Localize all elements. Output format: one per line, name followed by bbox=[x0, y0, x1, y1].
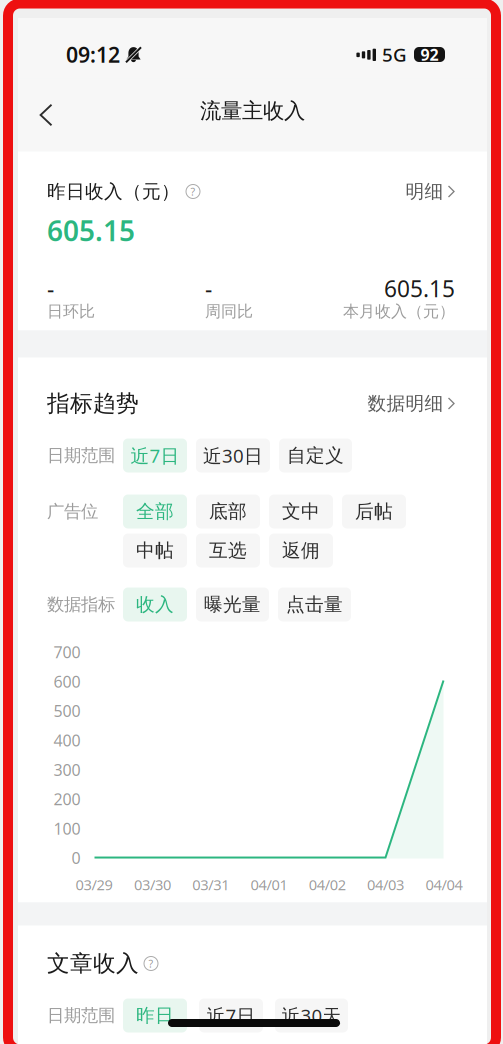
staticText: 日期范围 bbox=[47, 445, 115, 466]
button[interactable]: 返佣 bbox=[269, 533, 333, 567]
staticText: 04/04 bbox=[425, 875, 462, 894]
button[interactable]: 收入 bbox=[123, 587, 187, 621]
staticText: 0 bbox=[71, 847, 80, 868]
button[interactable]: 点击量 bbox=[278, 587, 351, 621]
staticText: 数据明细 bbox=[367, 392, 443, 415]
staticText: 近30日 bbox=[203, 443, 263, 468]
staticText: 09:12 bbox=[66, 40, 120, 69]
staticText: 300 bbox=[53, 759, 80, 780]
staticText: 全部 bbox=[136, 500, 174, 523]
staticText: 文中 bbox=[282, 500, 320, 523]
button[interactable]: 近30日 bbox=[196, 438, 270, 472]
staticText: 广告位 bbox=[47, 501, 98, 522]
staticText: 互选 bbox=[209, 539, 247, 562]
staticText: 返佣 bbox=[282, 539, 320, 562]
button[interactable]: 近7日 bbox=[123, 438, 187, 472]
staticText: 700 bbox=[53, 641, 80, 663]
staticText: 后帖 bbox=[355, 500, 393, 523]
staticText: 03/30 bbox=[134, 875, 171, 894]
button[interactable]: 互选 bbox=[196, 533, 260, 567]
staticText: 日环比 bbox=[47, 302, 95, 321]
staticText: 500 bbox=[53, 700, 80, 721]
button[interactable]: 数据明细 bbox=[367, 390, 455, 416]
staticText: 近7日 bbox=[130, 443, 179, 468]
staticText: 自定义 bbox=[287, 444, 344, 467]
staticText: 流量主收入 bbox=[200, 98, 305, 124]
staticText: 明细 bbox=[405, 180, 443, 203]
button[interactable]: 近7日 bbox=[199, 998, 263, 1032]
staticText: 600 bbox=[53, 671, 80, 692]
staticText: 近30天 bbox=[281, 1003, 341, 1028]
button[interactable]: 底部 bbox=[196, 494, 260, 528]
staticText: 周同比 bbox=[205, 302, 253, 321]
staticText: ? bbox=[148, 956, 153, 971]
staticText: 日期范围 bbox=[47, 1005, 115, 1026]
staticText: 底部 bbox=[209, 500, 247, 523]
staticText: 指标趋势 bbox=[47, 390, 139, 417]
staticText: 400 bbox=[53, 730, 80, 751]
button[interactable]: 后帖 bbox=[342, 494, 406, 528]
staticText: 03/29 bbox=[76, 875, 113, 894]
staticText: 收入 bbox=[136, 593, 174, 616]
button[interactable]: 昨日 bbox=[123, 998, 187, 1032]
staticText: 03/31 bbox=[192, 875, 229, 894]
button[interactable]: 明细 bbox=[405, 178, 455, 204]
staticText: 92 bbox=[420, 44, 438, 65]
staticText: 605.15 bbox=[384, 273, 455, 303]
staticText: 本月收入（元） bbox=[343, 302, 455, 321]
staticText: 昨日收入（元） bbox=[47, 180, 180, 203]
button[interactable]: 全部 bbox=[123, 494, 187, 528]
button[interactable]: 曝光量 bbox=[196, 587, 269, 621]
staticText: 605.15 bbox=[47, 212, 135, 249]
button[interactable]: 中帖 bbox=[123, 533, 187, 567]
staticText: ? bbox=[190, 184, 195, 199]
staticText: 200 bbox=[53, 788, 80, 810]
staticText: 5G bbox=[382, 42, 407, 67]
staticText: - bbox=[205, 273, 212, 303]
button[interactable]: 文中 bbox=[269, 494, 333, 528]
button[interactable]: 近30天 bbox=[275, 998, 348, 1032]
staticText: 04/02 bbox=[309, 875, 346, 894]
staticText: 数据指标 bbox=[47, 594, 115, 615]
staticText: 曝光量 bbox=[204, 593, 261, 616]
staticText: 中帖 bbox=[136, 539, 174, 562]
button[interactable]: 自定义 bbox=[279, 438, 352, 472]
staticText: 文章收入 bbox=[47, 950, 139, 977]
staticText: 04/03 bbox=[367, 875, 404, 894]
button[interactable]: Back bbox=[18, 90, 74, 140]
staticText: - bbox=[47, 273, 54, 303]
staticText: 100 bbox=[53, 818, 80, 839]
staticText: 04/01 bbox=[250, 875, 287, 894]
staticText: 近7日 bbox=[206, 1003, 255, 1028]
staticText: 昨日 bbox=[136, 1004, 174, 1027]
staticText: 点击量 bbox=[286, 593, 343, 616]
